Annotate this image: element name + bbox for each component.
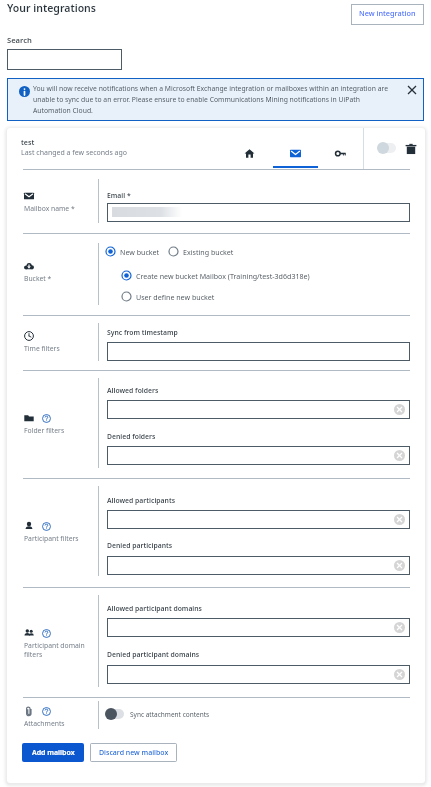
button[interactable] [107,665,410,684]
staticText: Denied participants [107,541,173,550]
staticText: You will now receive notifications when … [33,84,395,115]
staticText: Allowed folders [107,386,159,395]
button[interactable] [107,510,410,529]
staticText: Email * [107,191,131,200]
button[interactable] [107,556,410,575]
staticText: Participant filters [24,534,96,543]
staticText: Search [7,35,32,45]
staticText: Participant domain filters [24,641,96,659]
staticText: User define new bucket [136,292,215,302]
staticText: test [21,138,35,148]
staticText: Create new bucket Mailbox (Training/test… [136,271,310,281]
staticText: Discard new mailbox [99,748,169,758]
button[interactable]: Sync attachment contents [105,706,210,722]
button[interactable]: New bucket [105,245,160,258]
button[interactable] [107,400,410,419]
staticText: Time filters [24,344,96,353]
button[interactable]: Existing bucket [168,245,234,258]
button[interactable]: Enable integration [377,142,396,154]
staticText: Denied participant domains [107,650,200,659]
staticText: New integration [359,8,416,18]
staticText: Add mailbox [32,748,75,758]
button[interactable]: Add mailbox [22,743,84,762]
button[interactable] [107,618,410,637]
button[interactable]: Dismiss notification [404,82,420,98]
button[interactable] [7,49,122,70]
staticText: Your integrations [7,1,96,15]
staticText: Allowed participants [107,496,175,505]
staticText: Bucket * [24,274,96,283]
button[interactable]: User define new bucket [121,290,215,303]
staticText: Mailbox name * [24,204,96,213]
button[interactable] [107,342,410,361]
button[interactable]: Delete [403,141,419,157]
staticText: Existing bucket [183,247,234,257]
staticText: Folder filters [24,426,96,435]
staticText: Sync attachment contents [130,710,210,719]
staticText: New bucket [120,247,160,257]
button[interactable]: Create new bucket Mailbox (Training/test… [121,269,310,282]
button[interactable]: Overview [235,139,263,167]
staticText: Last changed a few seconds ago [21,148,128,158]
button[interactable]: Discard new mailbox [90,743,177,762]
staticText: Allowed participant domains [107,604,202,613]
button[interactable]: New integration [351,4,424,25]
button[interactable]: Mailboxes [273,139,318,167]
staticText: Sync from timestamp [107,328,178,337]
staticText: Denied folders [107,432,156,441]
button[interactable] [107,446,410,465]
staticText: Attachments [24,719,96,728]
button[interactable] [107,203,410,222]
button[interactable]: Credentials [326,139,354,167]
